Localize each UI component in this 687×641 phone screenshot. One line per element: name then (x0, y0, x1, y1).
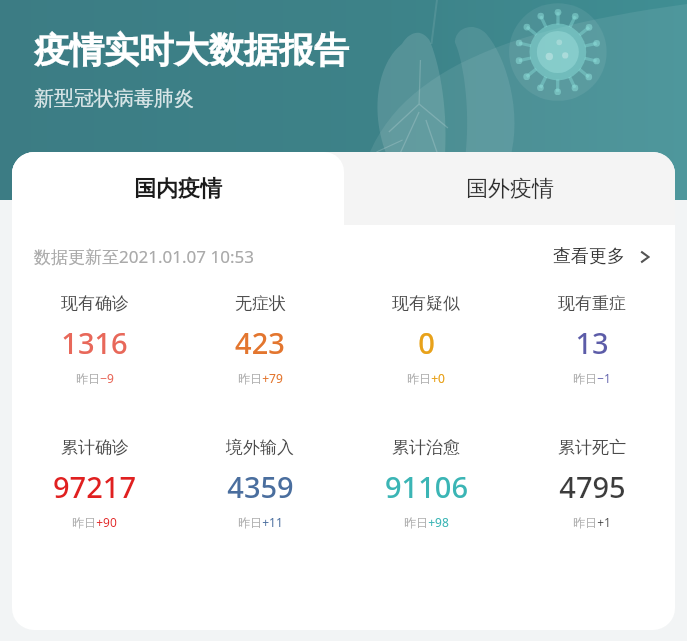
staticText: −1 (597, 370, 611, 386)
button[interactable]: 现有重症 (509, 293, 675, 386)
staticText: 昨日 (573, 371, 597, 386)
staticText: 累计死亡 (558, 437, 626, 458)
staticText: 97217 (53, 467, 136, 506)
staticText: 累计治愈 (392, 437, 460, 458)
staticText: 13 (575, 323, 609, 362)
button[interactable]: 累计确诊 (12, 437, 177, 530)
staticText: 现有重症 (558, 293, 626, 314)
staticText: 昨日 (72, 515, 96, 530)
staticText: 423 (235, 323, 285, 362)
staticText: +79 (262, 370, 283, 386)
button[interactable]: 国内疫情 (12, 152, 344, 225)
button[interactable]: 累计治愈 (343, 437, 509, 530)
staticText: 境外输入 (226, 437, 294, 458)
staticText: +98 (428, 514, 449, 530)
other: 查看更多 (637, 249, 653, 265)
staticText: 4795 (559, 467, 626, 506)
staticText: 昨日 (76, 371, 100, 386)
staticText: 昨日 (238, 515, 262, 530)
staticText: 91106 (385, 467, 468, 506)
staticText: 1316 (61, 323, 128, 362)
staticText: 数据更新至2021.01.07 10:53 (34, 245, 254, 268)
button[interactable]: 查看更多 (553, 245, 653, 268)
button[interactable]: 现有疑似 (343, 293, 509, 386)
staticText: 现有疑似 (392, 293, 460, 314)
staticText: 国外疫情 (466, 175, 554, 203)
staticText: +11 (262, 514, 283, 530)
staticText: 昨日 (238, 371, 262, 386)
staticText: 累计确诊 (61, 437, 129, 458)
button[interactable]: 现有确诊 (12, 293, 177, 386)
staticText: 无症状 (235, 293, 286, 314)
staticText: 现有确诊 (61, 293, 129, 314)
staticText: 昨日 (573, 515, 597, 530)
staticText: +1 (597, 514, 611, 530)
staticText: 查看更多 (553, 245, 625, 268)
staticText: +0 (431, 370, 445, 386)
button[interactable]: 境外输入 (177, 437, 343, 530)
button[interactable]: 无症状 (177, 293, 343, 386)
button[interactable]: 国外疫情 (344, 152, 675, 225)
staticText: 国内疫情 (134, 175, 222, 203)
staticText: 昨日 (404, 515, 428, 530)
staticText: 疫情实时大数据报告 (34, 28, 349, 72)
staticText: 4359 (227, 467, 294, 506)
staticText: 0 (418, 323, 435, 362)
staticText: 新型冠状病毒肺炎 (34, 86, 194, 111)
staticText: −9 (100, 370, 114, 386)
staticText: +90 (96, 514, 117, 530)
staticText: 昨日 (407, 371, 431, 386)
button[interactable]: 累计死亡 (509, 437, 675, 530)
